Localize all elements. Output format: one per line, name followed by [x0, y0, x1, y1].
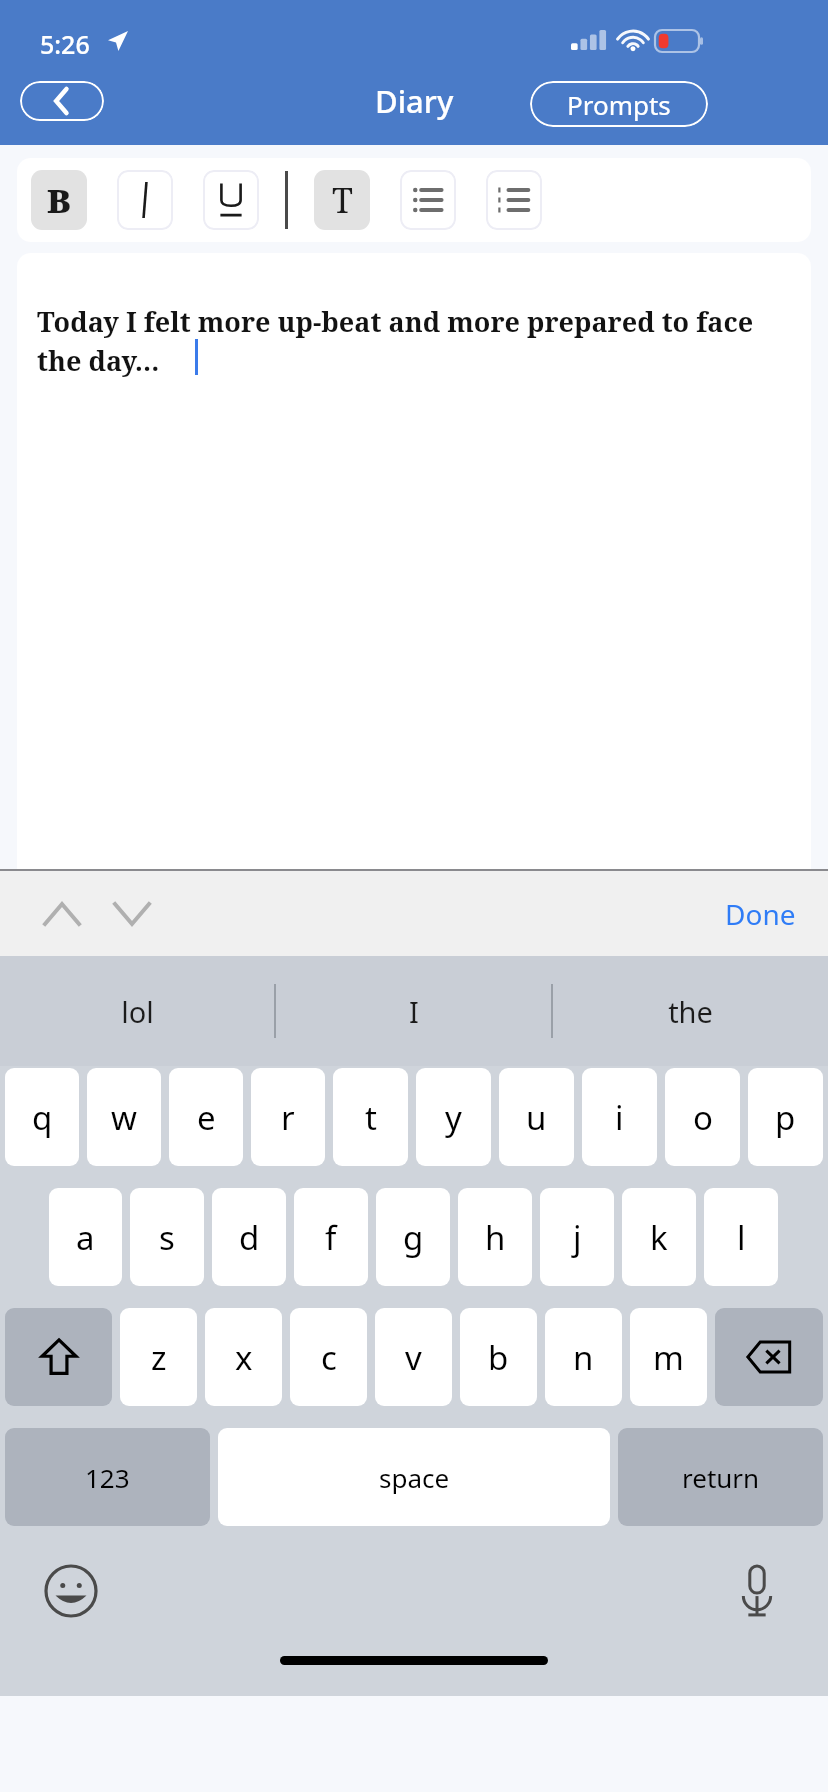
staticText: z — [151, 1335, 167, 1380]
button[interactable]: l — [704, 1188, 778, 1286]
button[interactable]: x — [205, 1308, 282, 1406]
button[interactable]: Italic — [117, 170, 173, 230]
button[interactable]: Numbered list — [486, 170, 542, 230]
button[interactable]: s — [130, 1188, 204, 1286]
staticText: p — [775, 1095, 796, 1140]
staticText: return — [682, 1460, 760, 1495]
staticText: o — [693, 1095, 713, 1140]
button[interactable]: h — [458, 1188, 532, 1286]
button[interactable]: n — [545, 1308, 622, 1406]
button[interactable]: Next field — [104, 886, 160, 942]
staticText: space — [379, 1460, 450, 1495]
button[interactable]: w — [87, 1068, 161, 1166]
button[interactable]: z — [120, 1308, 197, 1406]
staticText: x — [235, 1335, 253, 1380]
staticText: k — [650, 1215, 668, 1260]
button[interactable]: Prompts — [530, 81, 708, 127]
button[interactable]: a — [49, 1188, 122, 1286]
staticText: g — [403, 1215, 424, 1260]
staticText: d — [239, 1215, 260, 1260]
button[interactable]: r — [251, 1068, 325, 1166]
button[interactable]: g — [376, 1188, 450, 1286]
button[interactable]: b — [460, 1308, 537, 1406]
staticText: y — [445, 1095, 462, 1140]
button[interactable]: Back — [20, 81, 104, 121]
staticText: u — [526, 1095, 547, 1140]
staticText: j — [573, 1215, 582, 1260]
staticText: b — [488, 1335, 509, 1380]
staticText: h — [485, 1215, 506, 1260]
staticText: s — [159, 1215, 175, 1260]
staticText: c — [321, 1335, 337, 1380]
button[interactable]: j — [540, 1188, 614, 1286]
staticText: I — [409, 992, 419, 1031]
button[interactable]: Text style — [314, 170, 370, 230]
staticText: q — [32, 1095, 53, 1140]
staticText: T — [332, 177, 353, 223]
button[interactable]: Today I felt more up-beat and more prepa… — [17, 253, 811, 869]
staticText: f — [325, 1215, 337, 1260]
button[interactable]: Emoji — [40, 1560, 102, 1622]
button[interactable]: Bold — [31, 170, 87, 230]
button[interactable]: return — [618, 1428, 823, 1526]
button[interactable]: k — [622, 1188, 696, 1286]
button[interactable]: t — [333, 1068, 408, 1166]
button[interactable]: lol — [0, 956, 274, 1066]
button[interactable]: d — [212, 1188, 286, 1286]
button[interactable]: c — [290, 1308, 367, 1406]
staticText: Diary — [375, 80, 454, 122]
staticText: Done — [725, 895, 796, 933]
staticText: n — [573, 1335, 594, 1380]
button[interactable]: o — [665, 1068, 740, 1166]
staticText: Prompts — [567, 87, 671, 122]
staticText: e — [197, 1095, 216, 1140]
staticText: i — [615, 1095, 624, 1140]
staticText: a — [76, 1215, 95, 1260]
staticText: 123 — [85, 1460, 130, 1495]
button[interactable]: I — [276, 956, 551, 1066]
staticText: r — [281, 1095, 295, 1140]
button[interactable]: Shift — [5, 1308, 112, 1406]
button[interactable]: Underline — [203, 170, 259, 230]
staticText: l — [737, 1215, 746, 1260]
staticText: 5:26 — [40, 27, 90, 61]
button[interactable]: v — [375, 1308, 452, 1406]
button[interactable]: Backspace — [715, 1308, 823, 1406]
button[interactable]: Dictation — [726, 1560, 788, 1622]
button[interactable]: the — [553, 956, 828, 1066]
staticText: v — [405, 1335, 422, 1380]
button[interactable]: u — [499, 1068, 574, 1166]
staticText: m — [653, 1335, 684, 1380]
staticText: Today I felt more up-beat and more prepa… — [37, 303, 797, 379]
staticText: t — [365, 1095, 377, 1140]
button[interactable]: space — [218, 1428, 610, 1526]
staticText: w — [111, 1095, 137, 1140]
button[interactable]: 123 — [5, 1428, 210, 1526]
button[interactable]: q — [5, 1068, 79, 1166]
button[interactable]: m — [630, 1308, 707, 1406]
staticText: lol — [121, 992, 154, 1031]
staticText: B — [47, 178, 71, 223]
button[interactable]: f — [294, 1188, 368, 1286]
button[interactable]: y — [416, 1068, 491, 1166]
staticText: the — [668, 992, 713, 1031]
button[interactable]: Bulleted list — [400, 170, 456, 230]
button[interactable]: p — [748, 1068, 823, 1166]
button[interactable]: Done — [725, 895, 796, 933]
button[interactable]: e — [169, 1068, 243, 1166]
button[interactable]: i — [582, 1068, 657, 1166]
button[interactable]: Previous field — [34, 886, 90, 942]
